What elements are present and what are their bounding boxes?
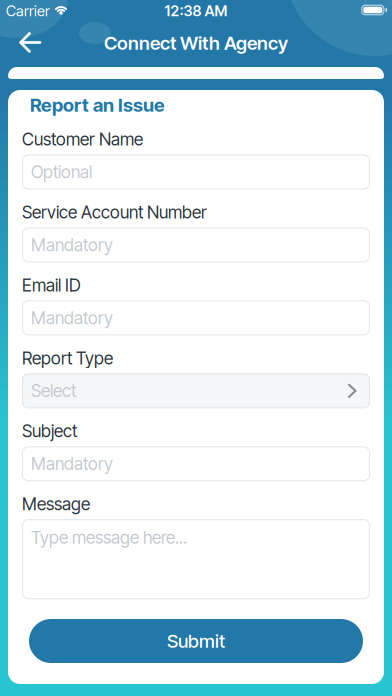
button[interactable]: Mandatory <box>22 300 370 335</box>
button[interactable] <box>19 33 41 52</box>
staticText: Report an Issue <box>30 94 165 116</box>
staticText: Mandatory <box>31 308 113 328</box>
staticText: Subject <box>22 421 77 441</box>
staticText: Report Type <box>22 348 113 368</box>
staticText: Type message here... <box>31 527 187 548</box>
button[interactable]: Submit <box>29 619 363 663</box>
button[interactable]: Mandatory <box>22 227 370 262</box>
button[interactable]: Type message here... <box>22 519 370 599</box>
staticText: Service Account Number <box>22 202 207 222</box>
staticText: Mandatory <box>31 453 113 474</box>
staticText: Select <box>31 381 76 401</box>
staticText: Mandatory <box>31 235 113 255</box>
staticText: Connect With Agency <box>104 32 288 54</box>
staticText: Optional <box>31 162 92 182</box>
staticText: 12:38 AM <box>164 2 227 20</box>
staticText: Carrier <box>6 2 50 20</box>
staticText: Message <box>22 494 90 514</box>
button[interactable]: Optional <box>22 154 370 189</box>
button[interactable]: Mandatory <box>22 446 370 481</box>
button[interactable]: Select <box>22 373 370 408</box>
staticText: Submit <box>167 630 225 652</box>
staticText: Email ID <box>22 275 81 295</box>
staticText: Customer Name <box>22 129 143 149</box>
